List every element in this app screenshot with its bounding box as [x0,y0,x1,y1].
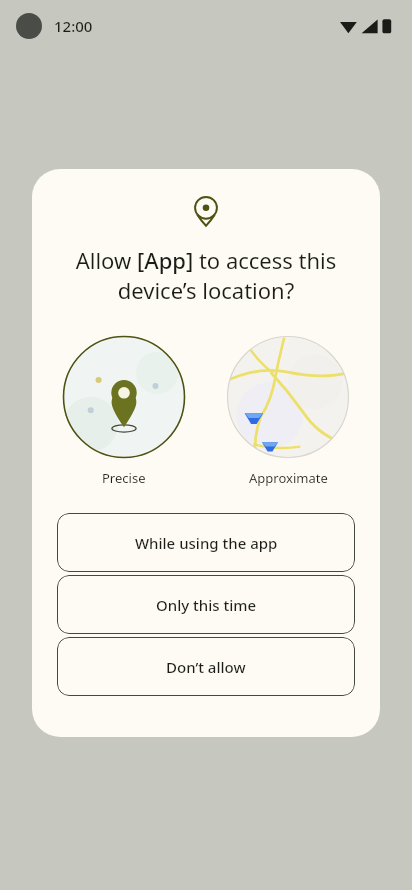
staticText: 12:00 [54,16,93,36]
button[interactable]: Profile [16,13,42,39]
staticText: While using the app [135,533,278,553]
button[interactable]: While using the app [57,513,355,572]
staticText: Only this time [156,595,257,615]
staticText: Allow [App] to access this device’s loca… [50,245,362,305]
staticText: Don’t allow [166,657,246,677]
button[interactable]: Precise [62,335,186,459]
button[interactable]: Don’t allow [57,637,355,696]
button[interactable]: Only this time [57,575,355,634]
staticText: Precise [102,469,146,487]
button[interactable]: Approximate [226,335,350,459]
staticText: Approximate [249,469,328,487]
